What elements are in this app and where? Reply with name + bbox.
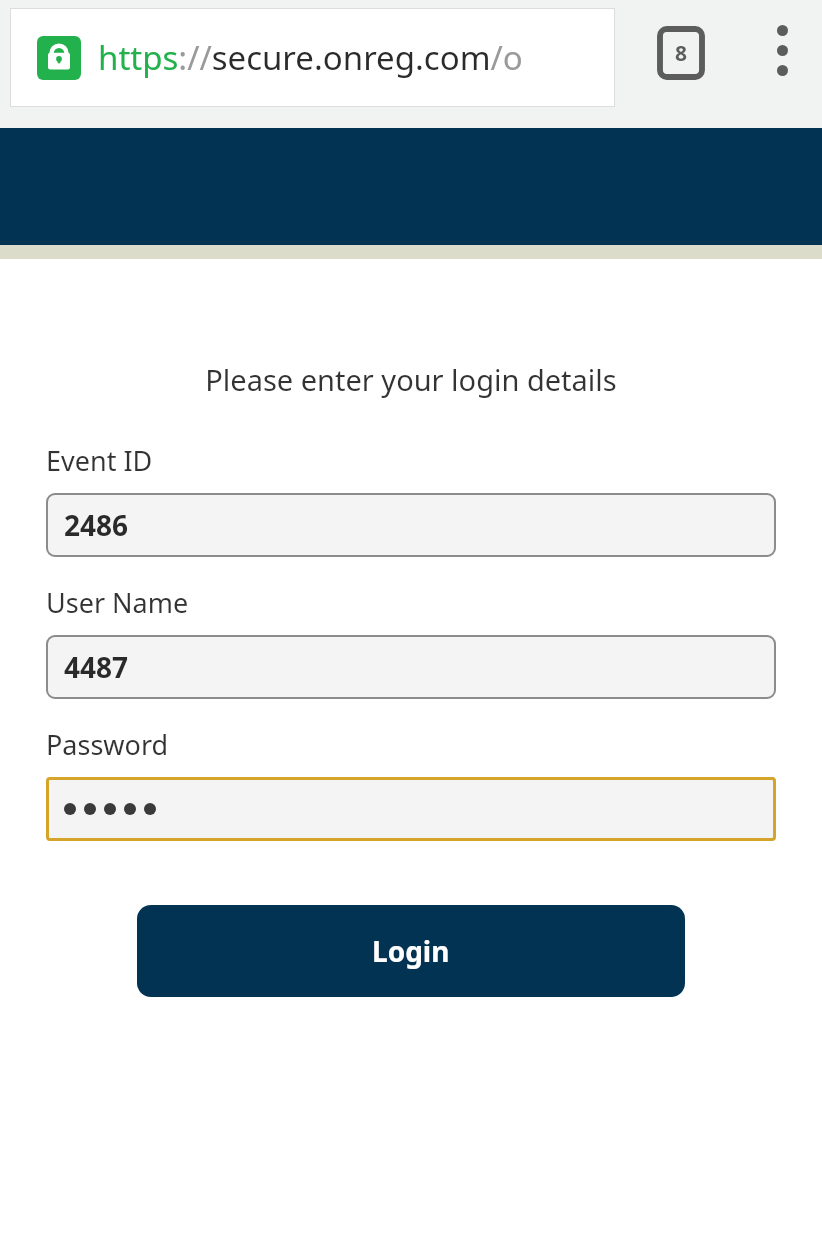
button[interactable]: 2486 bbox=[46, 493, 776, 557]
staticText: Password bbox=[46, 726, 169, 763]
button[interactable] bbox=[46, 777, 776, 841]
staticText: Event ID bbox=[46, 442, 153, 479]
button[interactable]: https://secure.onreg.com/o bbox=[10, 8, 615, 107]
staticText: 2486 bbox=[64, 506, 129, 544]
staticText: Login bbox=[372, 932, 450, 970]
staticText: 8 bbox=[675, 39, 688, 68]
staticText: User Name bbox=[46, 584, 189, 621]
button[interactable]: Login bbox=[137, 905, 685, 997]
button[interactable]: Tabs, 8 open bbox=[650, 22, 712, 84]
staticText: Please enter your login details bbox=[0, 360, 822, 399]
button[interactable]: More options bbox=[752, 20, 812, 80]
staticText: 4487 bbox=[64, 648, 129, 686]
button[interactable]: 4487 bbox=[46, 635, 776, 699]
staticText: https://secure.onreg.com/o bbox=[98, 35, 523, 80]
